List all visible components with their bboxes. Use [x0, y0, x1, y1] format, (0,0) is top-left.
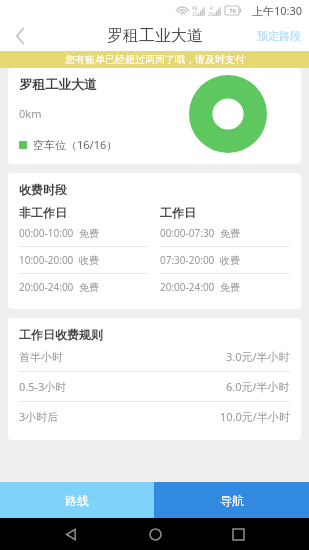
staticText: 您有账单已经超过两周了哦，请及时支付 — [65, 53, 245, 66]
staticText: 首半小时 — [19, 350, 63, 364]
staticText: 工作日 — [160, 205, 196, 220]
staticText: 免费 — [79, 227, 99, 240]
staticText: 00:00-07:30 — [160, 226, 215, 240]
staticText: 2G — [208, 11, 214, 17]
staticText: 10:00-20:00 — [19, 253, 74, 267]
staticText: 预定路段 — [257, 29, 301, 43]
staticText: 免费 — [220, 281, 240, 294]
staticText: 3.0元/半小时 — [226, 349, 290, 364]
staticText: 非工作日 — [19, 205, 67, 220]
staticText: 工作日收费规则 — [19, 327, 103, 342]
staticText: 10.0元/半小时 — [220, 409, 290, 424]
staticText: 路线 — [65, 493, 89, 508]
button[interactable]: Home — [142, 521, 168, 547]
staticText: 罗租工业大道 — [19, 76, 97, 92]
staticText: 20:00-24:00 — [160, 280, 215, 294]
staticText: 6.0元/半小时 — [226, 379, 290, 394]
staticText: 收费 — [220, 254, 240, 267]
button[interactable]: Recents — [225, 521, 251, 547]
button[interactable]: Back — [58, 521, 84, 547]
staticText: 2G — [192, 11, 198, 17]
staticText: 免费 — [220, 227, 240, 240]
staticText: 收费时段 — [19, 182, 67, 197]
staticText: 0.5-3小时 — [19, 379, 67, 394]
staticText: 4G — [192, 5, 198, 11]
staticText: 罗租工业大道 — [107, 26, 203, 46]
staticText: 空车位（16/16） — [33, 137, 118, 152]
button[interactable]: 路线 — [0, 482, 154, 518]
staticText: 00:00-10:00 — [19, 226, 74, 240]
staticText: 20:00-24:00 — [19, 280, 74, 294]
staticText: 上午10:30 — [252, 3, 303, 18]
staticText: 导航 — [220, 493, 244, 508]
staticText: 76 — [229, 7, 236, 15]
staticText: 收费 — [79, 254, 99, 267]
staticText: 免费 — [79, 281, 99, 294]
button[interactable]: Back — [0, 20, 40, 51]
staticText: R — [210, 5, 213, 11]
staticText: 07:30-20:00 — [160, 253, 215, 267]
button[interactable]: 导航 — [154, 482, 309, 518]
staticText: 0km — [19, 106, 42, 121]
staticText: 3小时后 — [19, 409, 59, 424]
button[interactable]: 预定路段 — [249, 23, 309, 49]
